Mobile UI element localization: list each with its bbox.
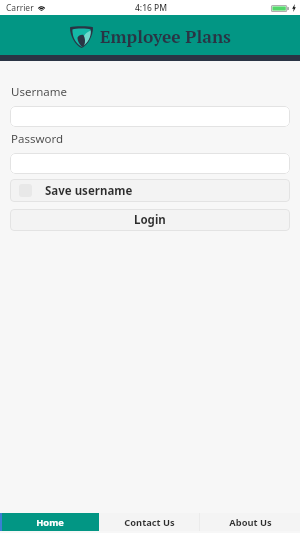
button[interactable]: Save username — [10, 179, 290, 202]
button[interactable]: Contact Us — [99, 513, 199, 531]
button[interactable]: About Us — [200, 513, 300, 531]
staticText: Contact Us — [124, 516, 175, 529]
staticText: Carrier — [6, 2, 34, 14]
button[interactable]: Home — [0, 513, 99, 531]
staticText: 4:16 PM — [135, 2, 168, 14]
staticText: Login — [134, 212, 166, 228]
staticText: Home — [36, 516, 64, 529]
other: Battery charging — [271, 4, 296, 12]
other: Wi-Fi signal — [37, 4, 46, 11]
staticText: Save username — [45, 183, 133, 199]
button[interactable]: Login — [10, 209, 290, 231]
button[interactable] — [10, 153, 290, 174]
staticText: About Us — [229, 516, 272, 529]
staticText: Password — [11, 131, 64, 147]
staticText: Username — [11, 84, 67, 100]
staticText: Employee Plans — [100, 25, 231, 48]
button[interactable] — [10, 106, 290, 127]
